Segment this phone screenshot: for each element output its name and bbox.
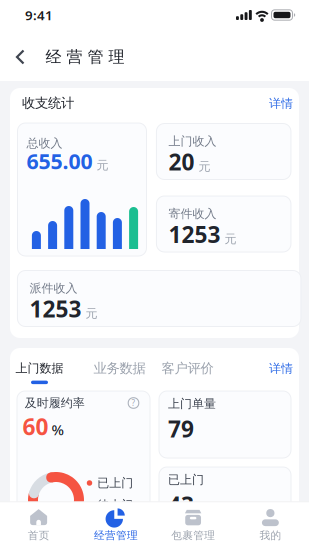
button[interactable]: 包裹管理 <box>154 501 232 550</box>
staticText: 我的 <box>259 529 281 542</box>
staticText: 已上门 <box>168 472 204 487</box>
staticText: 1253 <box>168 219 220 249</box>
staticText: 经营管理 <box>45 47 124 67</box>
button[interactable]: 详情 <box>261 357 301 379</box>
staticText: 79 <box>168 414 194 444</box>
staticText: 收支统计 <box>22 95 74 111</box>
staticText: 及时履约率 <box>25 396 85 410</box>
button[interactable]: 我的 <box>232 501 309 550</box>
staticText: 上门单量 <box>168 396 216 411</box>
staticText: 业务数据 <box>93 360 145 377</box>
staticText: 9:41 <box>25 6 53 24</box>
staticText: 客户评价 <box>161 360 213 377</box>
staticText: 已上门 <box>97 476 133 490</box>
staticText: 43 <box>168 490 194 520</box>
staticText: 1253 <box>29 294 81 324</box>
staticText: % <box>51 420 63 439</box>
staticText: 655.00 <box>26 147 92 175</box>
staticText: 经营管理 <box>94 529 138 542</box>
staticText: 60 <box>22 411 48 441</box>
button[interactable] <box>13 46 29 67</box>
staticText: 元 <box>224 232 236 246</box>
button[interactable]: 业务数据 <box>93 357 145 379</box>
staticText: ? <box>131 398 135 408</box>
staticText: 派件收入 <box>29 281 77 296</box>
button[interactable]: 上门数据 <box>15 361 63 384</box>
button[interactable]: 客户评价 <box>161 357 213 379</box>
staticText: 上门数据 <box>15 361 63 376</box>
staticText: 上门收入 <box>168 134 216 149</box>
button[interactable]: ? <box>128 398 139 408</box>
staticText: 详情 <box>269 96 293 111</box>
staticText: 20 <box>168 147 194 177</box>
staticText: 元 <box>96 158 108 172</box>
staticText: 元 <box>198 159 210 174</box>
button[interactable]: 经营管理 <box>77 501 154 550</box>
staticText: 总收入 <box>26 136 62 151</box>
staticText: 包裹管理 <box>171 529 215 542</box>
button[interactable]: 详情 <box>261 92 301 114</box>
staticText: 寄件收入 <box>168 206 216 221</box>
staticText: 详情 <box>269 361 293 376</box>
staticText: 待上门 <box>97 498 133 512</box>
staticText: 首页 <box>28 529 50 542</box>
button[interactable]: 首页 <box>0 501 77 550</box>
staticText: 元 <box>85 306 97 321</box>
